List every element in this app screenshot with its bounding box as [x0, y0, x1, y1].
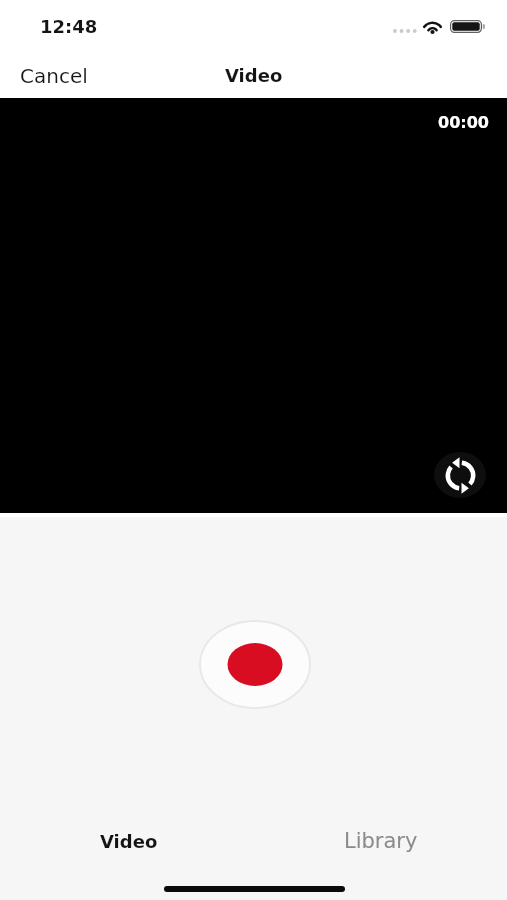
button[interactable]: Cancel	[13, 60, 95, 90]
staticText: Video	[100, 831, 158, 852]
button[interactable]: Record	[199, 620, 311, 709]
staticText: Library	[344, 829, 418, 853]
staticText: 00:00	[438, 113, 489, 132]
staticText: 12:48	[40, 16, 98, 37]
button[interactable]: Library	[310, 821, 452, 861]
button[interactable]: Flip camera	[434, 452, 486, 498]
button[interactable]: Video	[58, 821, 200, 861]
staticText: Video	[225, 65, 283, 86]
staticText: Cancel	[20, 64, 88, 87]
